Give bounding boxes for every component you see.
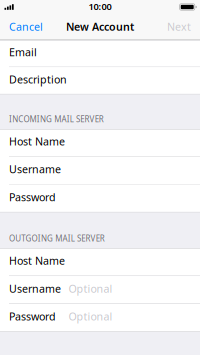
button[interactable]: Host Name [0, 129, 200, 157]
staticText: 10:00 [88, 0, 111, 13]
staticText: Description [9, 72, 67, 86]
button[interactable]: Username [0, 157, 200, 185]
button[interactable]: Email [0, 40, 200, 67]
staticText: OUTGOING MAIL SERVER [9, 233, 105, 244]
staticText: Next [167, 19, 191, 34]
staticText: Cancel [9, 19, 43, 34]
staticText: New Account [66, 19, 134, 34]
staticText: Host Name [9, 254, 65, 268]
staticText: Optional [68, 309, 112, 323]
button[interactable]: Username [0, 276, 200, 304]
button[interactable]: Password [0, 304, 200, 332]
button[interactable]: Cancel [0, 14, 49, 40]
staticText: Email [9, 45, 37, 59]
staticText: Password [9, 190, 56, 204]
staticText: Password [9, 309, 56, 323]
button[interactable]: Password [0, 185, 200, 212]
button[interactable]: Description [0, 67, 200, 94]
staticText: Username [9, 162, 61, 176]
staticText: Optional [68, 281, 112, 296]
staticText: Username [9, 281, 61, 296]
staticText: Host Name [9, 134, 65, 148]
button[interactable]: Next [161, 14, 200, 40]
button[interactable]: Host Name [0, 248, 200, 276]
staticText: INCOMING MAIL SERVER [9, 114, 104, 124]
